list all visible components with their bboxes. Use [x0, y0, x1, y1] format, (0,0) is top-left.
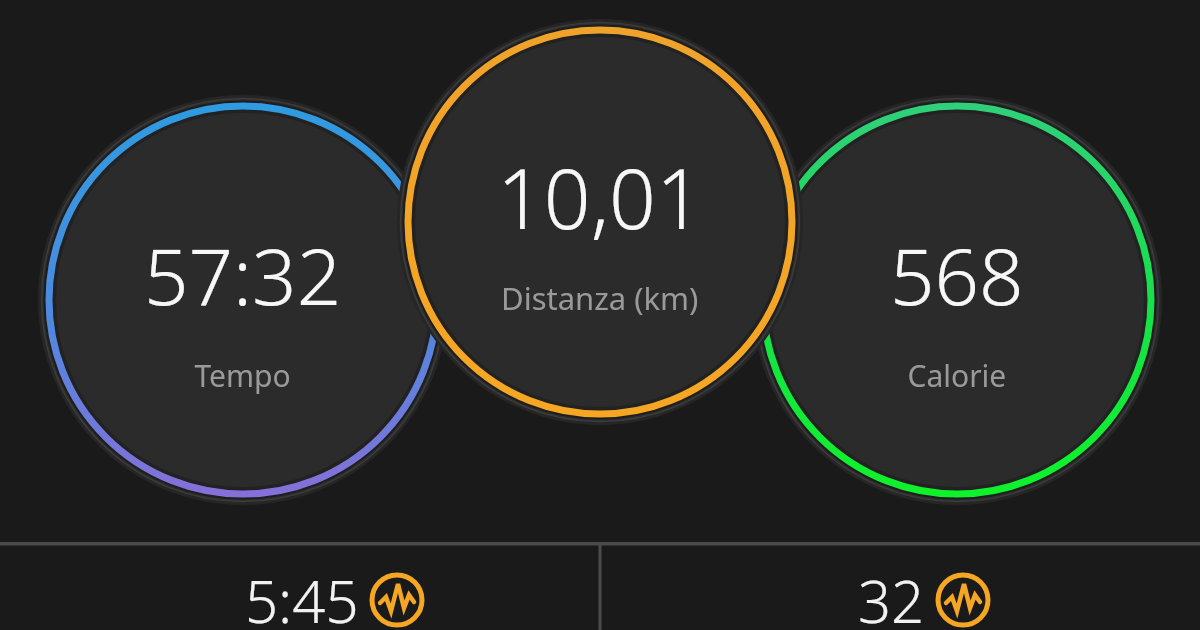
other: Workout stats: [0, 0, 1200, 630]
button[interactable]: Workout stats: [0, 0, 1200, 630]
